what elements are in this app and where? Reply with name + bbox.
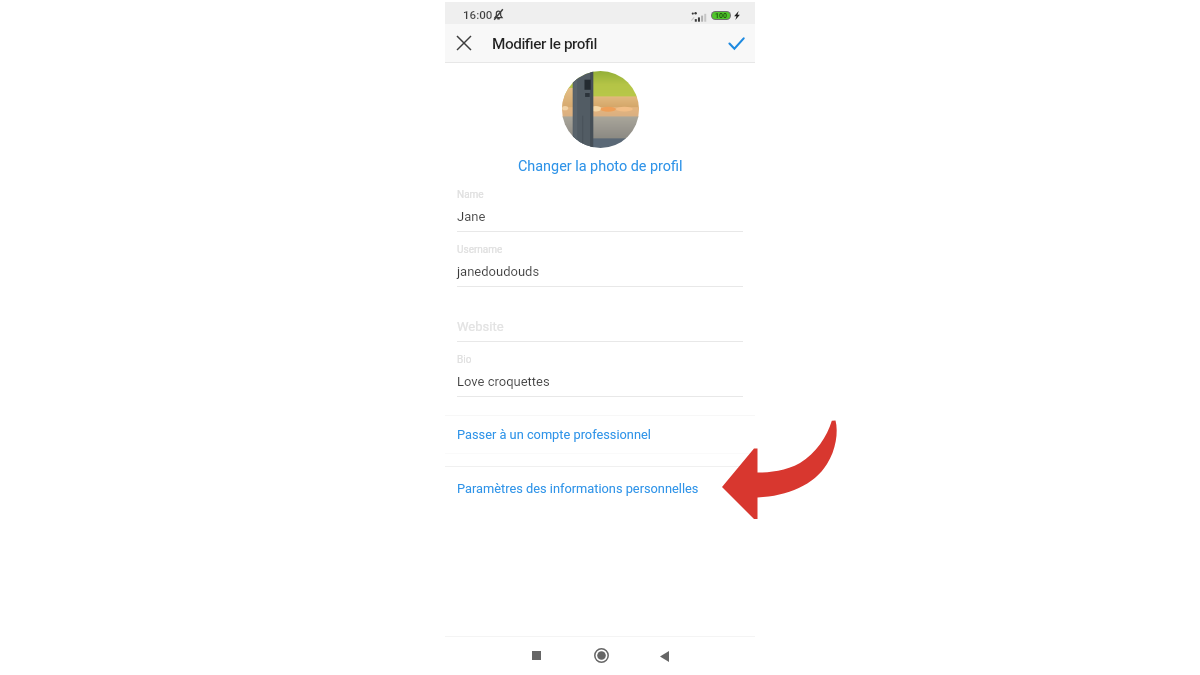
button[interactable]: Close [445,24,482,61]
button[interactable]: Home [585,639,617,671]
button[interactable]: Changer la photo de profil [445,155,755,177]
staticText: Love croquettes [457,374,550,389]
button[interactable]: Name [457,183,743,232]
button[interactable]: Username [457,238,743,287]
staticText: janedoudouds [457,264,540,279]
staticText: Modifier le profil [492,35,597,53]
staticText: 100 [715,12,728,19]
staticText: Username [457,244,503,256]
button[interactable]: Done [718,25,755,62]
button[interactable]: Paramètres des informations personnelles [445,467,755,509]
button[interactable]: Bio [457,348,743,397]
staticText: Website [457,319,504,334]
staticText: Jane [457,209,486,224]
button[interactable]: Back [648,640,680,672]
button[interactable]: Profile photo [562,71,639,148]
staticText: Paramètres des informations personnelles [457,481,699,496]
staticText: Passer à un compte professionnel [457,427,651,442]
staticText: Changer la photo de profil [518,158,683,175]
staticText: 16:00 [463,8,493,22]
button[interactable]: Website [457,309,743,342]
button[interactable]: Recent apps [520,639,552,671]
button[interactable]: Passer à un compte professionnel [445,416,755,453]
staticText: Name [457,189,484,201]
staticText: Bio [457,354,472,366]
